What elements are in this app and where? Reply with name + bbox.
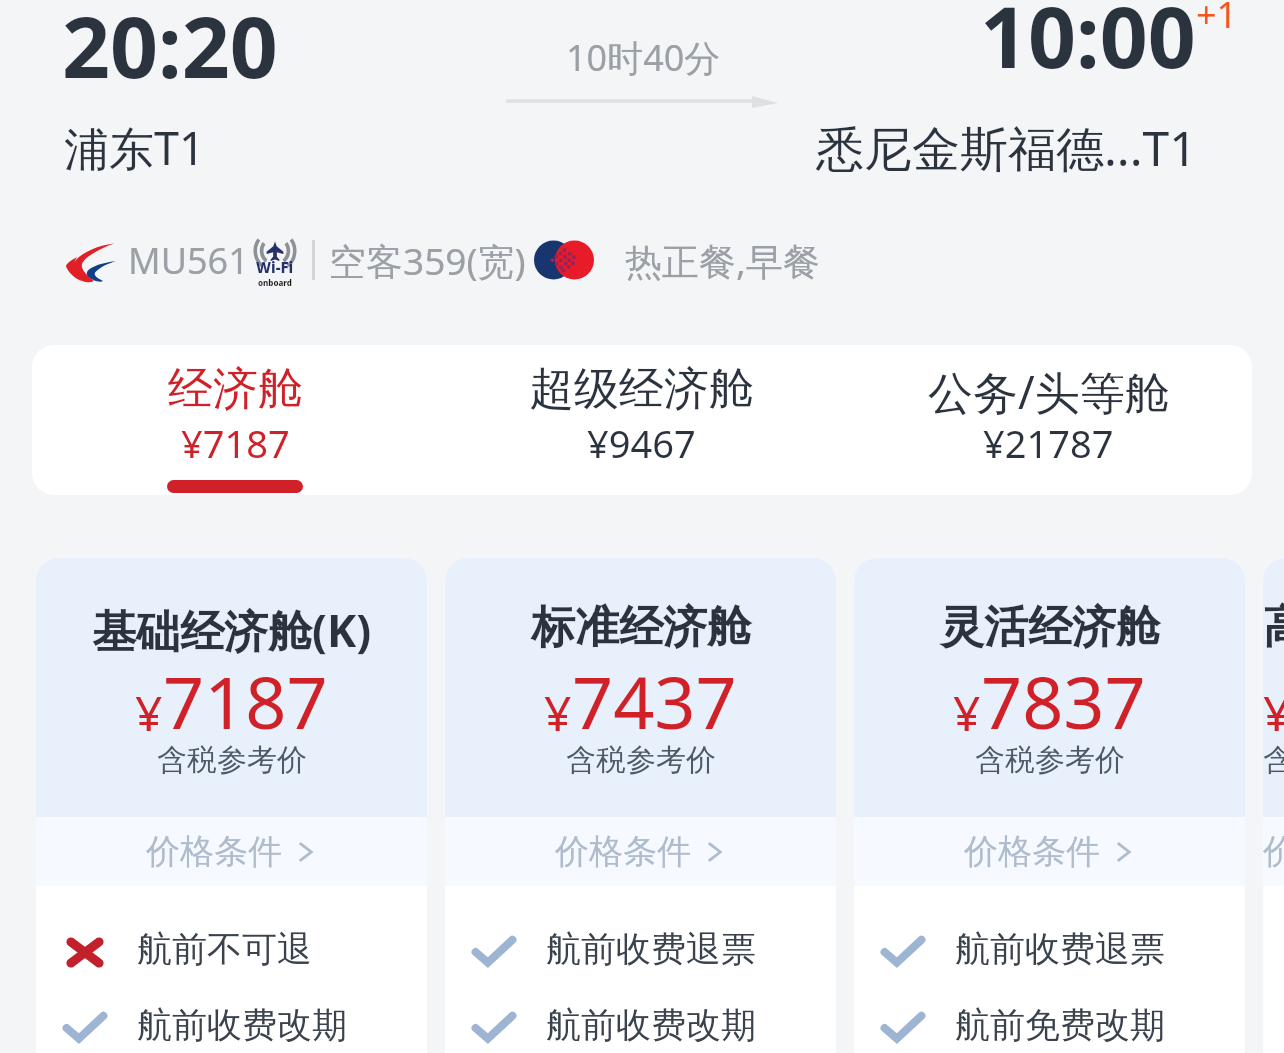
- staticText: +1: [1196, 0, 1238, 39]
- staticText: 含税参考价: [157, 741, 307, 779]
- button[interactable]: 超级经济舱: [438, 345, 845, 495]
- staticText: 10时40分: [566, 33, 721, 82]
- staticText: 20:20: [62, 0, 278, 102]
- staticText: 价格条件: [555, 830, 691, 873]
- staticText: Wi-Fi: [256, 257, 294, 277]
- staticText: ¥9467: [587, 417, 696, 469]
- staticText: 7187: [163, 652, 328, 750]
- button[interactable]: 标准经济舱: [445, 558, 836, 1053]
- button[interactable]: 经济舱: [32, 345, 438, 495]
- button[interactable]: 灵活经济舱: [854, 558, 1245, 1053]
- staticText: 航前收费退票: [546, 927, 756, 971]
- staticText: 含税参考价: [566, 741, 716, 779]
- staticText: 7837: [981, 652, 1146, 750]
- button[interactable]: 高端经济舱: [1263, 558, 1284, 1053]
- staticText: 悉尼金斯福德...T1: [816, 115, 1197, 181]
- staticText: 航前收费改期: [546, 1003, 756, 1047]
- staticText: 航前不可退: [137, 927, 312, 971]
- staticText: 价格条件: [146, 830, 282, 873]
- staticText: ¥21787: [983, 417, 1114, 469]
- staticText: 价格条件: [1263, 830, 1284, 873]
- staticText: 含税参考价: [975, 741, 1125, 779]
- staticText: 基础经济舱(K): [92, 600, 372, 660]
- staticText: 价格条件: [964, 830, 1100, 873]
- staticText: 7437: [572, 652, 737, 750]
- staticText: ¥: [1263, 680, 1284, 745]
- button[interactable]: 公务/头等舱: [845, 345, 1252, 495]
- staticText: onboard: [258, 277, 292, 288]
- staticText: 10:00: [980, 0, 1196, 92]
- staticText: 航前收费改期: [137, 1003, 347, 1047]
- staticText: 经济舱: [168, 361, 303, 418]
- staticText: ¥: [953, 680, 981, 745]
- staticText: 含税参考价: [1263, 741, 1284, 779]
- staticText: ¥: [544, 680, 572, 745]
- staticText: 航前收费退票: [955, 927, 1165, 971]
- staticText: 热正餐,早餐: [625, 235, 820, 286]
- staticText: 超级经济舱: [529, 361, 754, 418]
- staticText: MU561: [128, 236, 249, 285]
- staticText: 航前免费改期: [955, 1003, 1165, 1047]
- staticText: ¥: [135, 680, 163, 745]
- staticText: 空客359(宽): [329, 235, 526, 286]
- staticText: ¥7187: [181, 417, 290, 469]
- button[interactable]: 基础经济舱(K): [36, 558, 427, 1053]
- staticText: 灵活经济舱: [940, 600, 1160, 655]
- staticText: 浦东T1: [64, 117, 205, 178]
- staticText: 标准经济舱: [531, 600, 751, 655]
- staticText: 高端经济舱: [1263, 600, 1284, 655]
- staticText: 公务/头等舱: [928, 361, 1170, 422]
